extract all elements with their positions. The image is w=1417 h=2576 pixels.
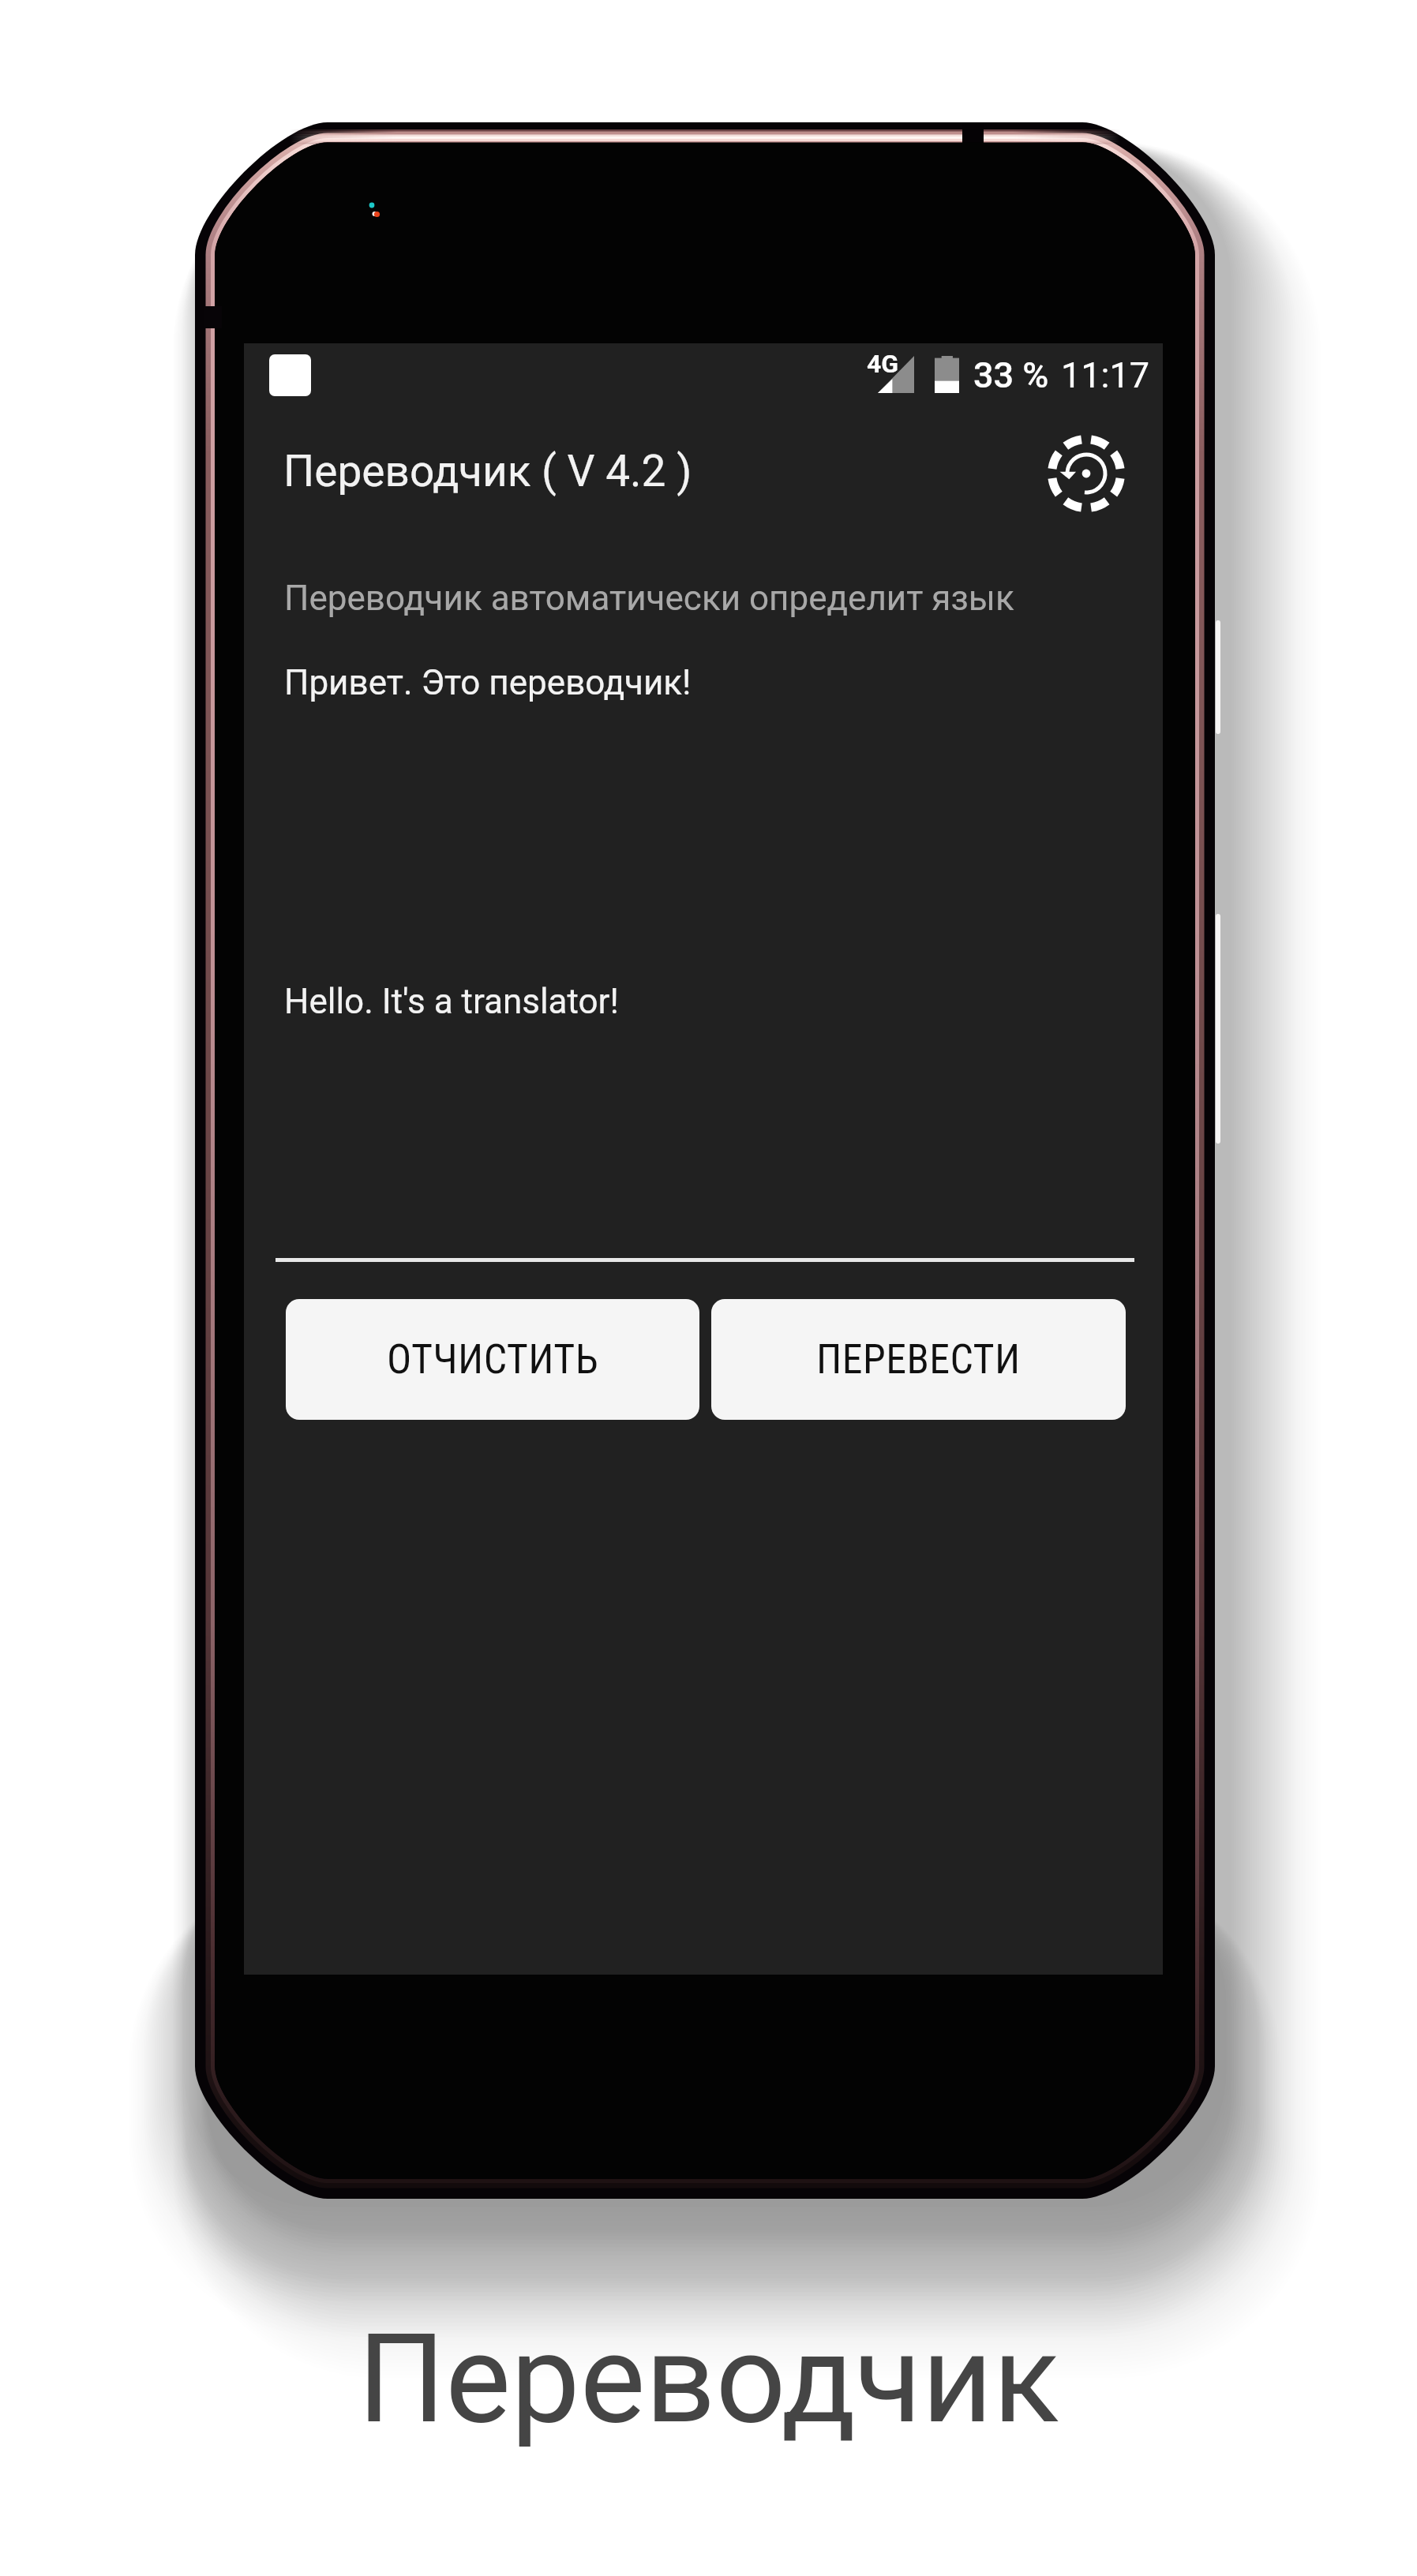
- staticText: 11:17: [1061, 354, 1150, 396]
- button[interactable]: Hello. It's a translator!: [276, 967, 1136, 1235]
- staticText: 4G: [867, 349, 899, 379]
- staticText: Переводчик ( V 4.2 ): [283, 446, 692, 496]
- staticText: Переводчик автоматически определит язык: [284, 578, 1014, 619]
- staticText: Привет. Это переводчик!: [284, 662, 692, 703]
- staticText: 33 %: [973, 354, 1049, 396]
- button[interactable]: ОТЧИСТИТЬ: [286, 1299, 699, 1420]
- button[interactable]: Привет. Это переводчик!: [276, 648, 1136, 948]
- staticText: ОТЧИСТИТЬ: [387, 1335, 599, 1383]
- button[interactable]: ПЕРЕВЕСТИ: [711, 1299, 1126, 1420]
- button[interactable]: Restore settings: [1037, 424, 1136, 523]
- button[interactable]: Переводчик автоматически определит язык: [276, 561, 1136, 634]
- staticText: ПЕРЕВЕСТИ: [816, 1335, 1021, 1383]
- staticText: Переводчик: [358, 2307, 1059, 2451]
- staticText: Hello. It's a translator!: [284, 981, 619, 1022]
